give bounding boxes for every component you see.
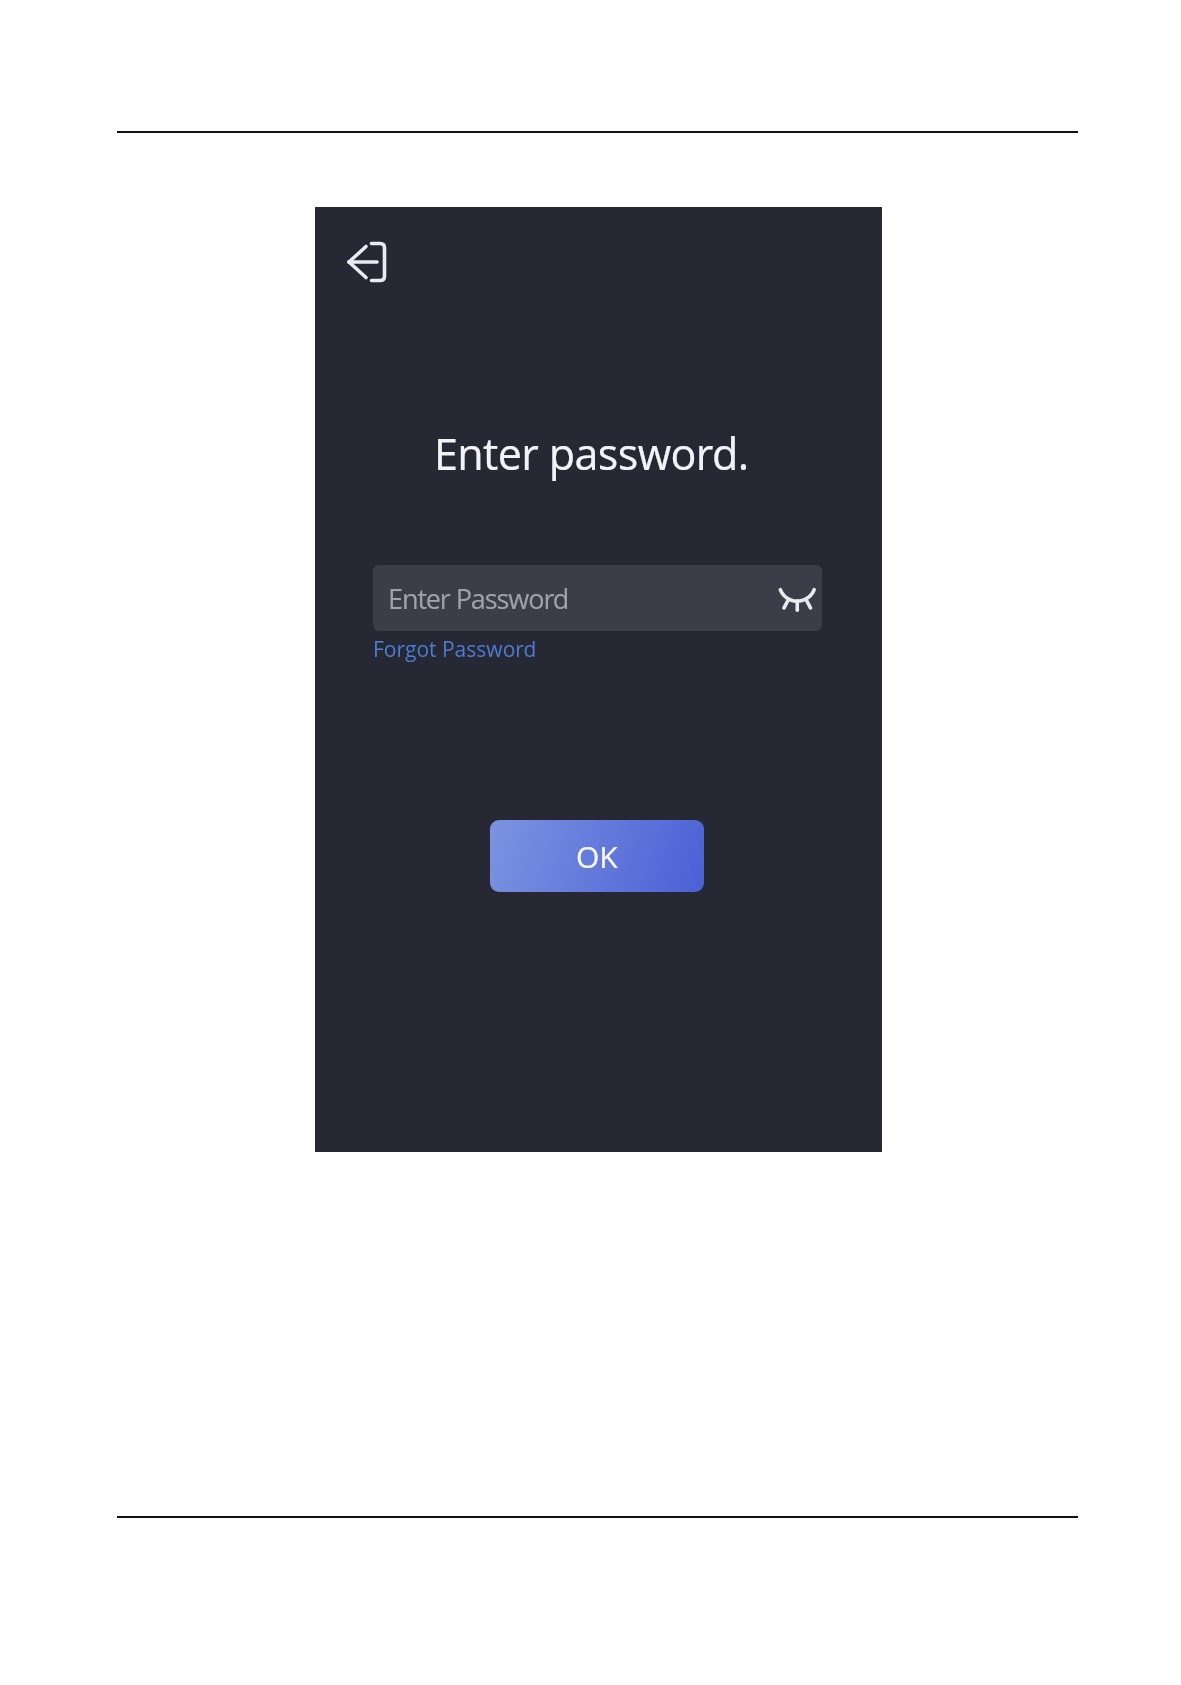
staticText: Enter password. — [434, 424, 749, 483]
staticText: Enter Password — [388, 580, 569, 617]
button[interactable]: Forgot Password — [373, 635, 537, 664]
button[interactable]: Enter Password — [373, 565, 822, 631]
button[interactable] — [339, 232, 397, 290]
staticText: OK — [576, 836, 618, 877]
staticText: Forgot Password — [373, 635, 537, 664]
button[interactable]: OK — [490, 820, 704, 892]
